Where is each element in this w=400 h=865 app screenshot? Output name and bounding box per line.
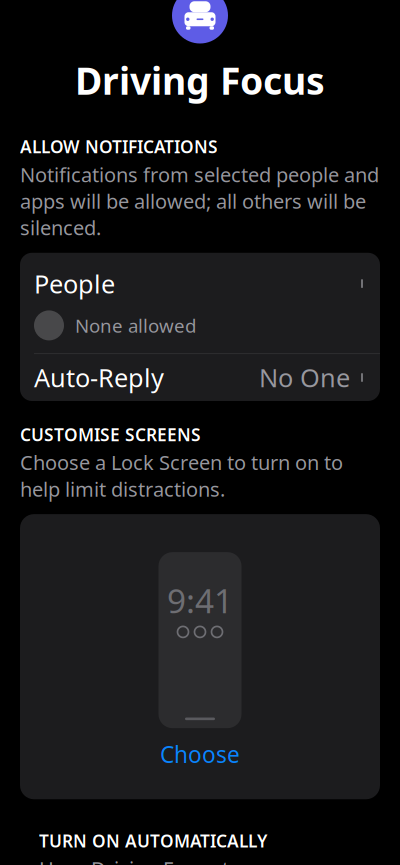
button[interactable]: 9:41 <box>20 514 380 799</box>
staticText: People <box>34 267 115 300</box>
button[interactable]: Auto-Reply <box>20 354 380 401</box>
staticText: ALLOW NOTIFICATIONS <box>20 135 218 158</box>
staticText: Notifications from selected people and a… <box>20 161 379 241</box>
staticText: Choose a Lock Screen to turn on to help … <box>20 449 343 502</box>
staticText: Driving Focus <box>75 55 325 105</box>
button[interactable]: People <box>20 253 380 353</box>
staticText: Auto-Reply <box>34 361 164 394</box>
staticText: Choose <box>160 739 240 769</box>
staticText: Have Driving Focus turn on automatically… <box>39 855 361 865</box>
staticText: None allowed <box>75 313 196 338</box>
staticText: TURN ON AUTOMATICALLY <box>39 829 267 852</box>
staticText: CUSTOMISE SCREENS <box>20 423 201 446</box>
staticText: No One <box>259 361 350 394</box>
staticText: 9:41 <box>167 578 233 622</box>
